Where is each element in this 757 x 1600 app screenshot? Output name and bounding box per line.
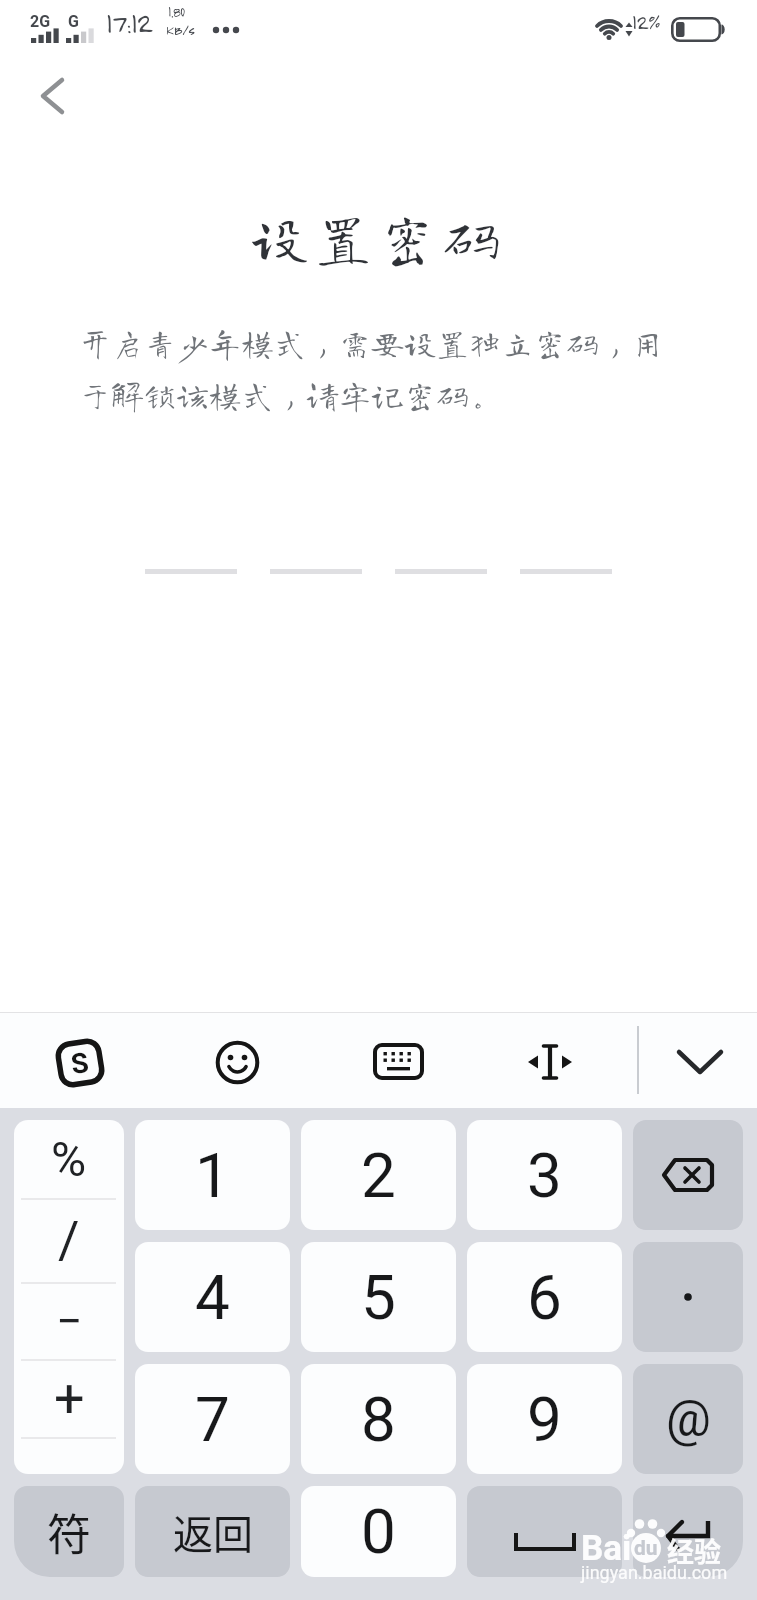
staticText: / (58, 1210, 80, 1271)
button[interactable] (633, 1486, 743, 1577)
button[interactable]: 7 (135, 1364, 290, 1474)
staticText: 12% (632, 9, 660, 34)
staticText: 开启青少年模式，需要设置独立密码，用 于解锁该模式，请牢记密码。 (79, 327, 665, 411)
staticText: @ (666, 1390, 711, 1449)
button[interactable]: @ (633, 1364, 743, 1474)
button[interactable]: 2 (301, 1120, 456, 1230)
button[interactable] (526, 1043, 574, 1081)
staticText: % (51, 1131, 87, 1187)
staticText: 4 (195, 1261, 230, 1334)
staticText: 8 (361, 1383, 396, 1456)
staticText: − (56, 1294, 83, 1348)
button[interactable] (633, 1242, 743, 1352)
staticText: Bai (581, 1528, 632, 1569)
staticText: 6 (527, 1261, 562, 1334)
staticText: 1 (195, 1139, 230, 1212)
staticText: 3 (527, 1139, 562, 1212)
staticText: 2 (361, 1139, 396, 1212)
button[interactable] (373, 1043, 425, 1081)
staticText: 返回 (173, 1503, 253, 1561)
button[interactable]: % (14, 1120, 124, 1474)
staticText: S (69, 1046, 91, 1081)
staticText: 设置密码 (251, 209, 507, 266)
staticText: 符 (47, 1500, 91, 1564)
staticText: 7 (195, 1383, 230, 1456)
staticText: 2G (30, 12, 51, 31)
button[interactable]: 0 (301, 1486, 456, 1577)
button[interactable]: 5 (301, 1242, 456, 1352)
button[interactable]: 3 (467, 1120, 622, 1230)
button[interactable]: 1 (135, 1120, 290, 1230)
staticText: du (634, 1536, 658, 1561)
button[interactable]: 8 (301, 1364, 456, 1474)
staticText: jingyan.baidu.com (581, 1562, 728, 1583)
button[interactable]: 9 (467, 1364, 622, 1474)
button[interactable] (672, 1040, 728, 1084)
staticText: + (54, 1367, 85, 1430)
staticText: G (68, 12, 79, 31)
button[interactable]: 4 (135, 1242, 290, 1352)
staticText: 1.80 (168, 3, 185, 20)
button[interactable] (28, 68, 76, 124)
staticText: 5 (361, 1261, 396, 1334)
button[interactable] (215, 1040, 260, 1085)
staticText: 9 (527, 1383, 562, 1456)
button[interactable]: 6 (467, 1242, 622, 1352)
staticText: 0 (361, 1495, 396, 1568)
button[interactable] (633, 1120, 743, 1230)
staticText: KB/s (166, 21, 195, 38)
staticText: 经验 (667, 1531, 721, 1570)
button[interactable]: 返回 (135, 1486, 290, 1577)
button[interactable]: S (54, 1037, 106, 1089)
staticText: 17:12 (106, 6, 152, 39)
button[interactable]: 符 (14, 1486, 124, 1577)
button[interactable] (467, 1486, 622, 1577)
